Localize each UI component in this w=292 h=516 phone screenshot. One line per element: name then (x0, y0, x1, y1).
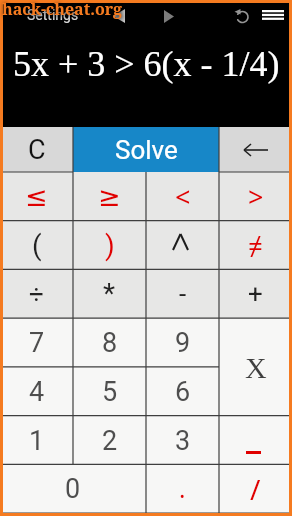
staticText: 6 (175, 376, 191, 408)
button[interactable]: 2 (73, 416, 146, 465)
staticText: ≥ (98, 181, 121, 212)
staticText: + (248, 279, 263, 309)
button[interactable] (262, 10, 284, 21)
button[interactable]: ≠ (219, 221, 292, 270)
button[interactable]: X (219, 318, 292, 416)
button[interactable]: 0 (0, 464, 146, 513)
button[interactable]: 5 (73, 367, 146, 416)
staticText: 2 (102, 425, 118, 457)
button[interactable]: ( (0, 221, 73, 270)
button[interactable]: * (73, 269, 146, 318)
staticText: ) (105, 229, 115, 262)
staticText: - (179, 279, 187, 309)
button[interactable]: < (146, 172, 219, 221)
button[interactable]: Settings (27, 7, 79, 23)
button[interactable]: C (0, 127, 73, 172)
button[interactable]: 8 (73, 318, 146, 367)
button[interactable]: / (219, 464, 292, 513)
staticText: C (28, 134, 46, 166)
button[interactable]: 3 (146, 416, 219, 465)
staticText: > (248, 178, 264, 215)
staticText: 4 (29, 376, 45, 408)
button[interactable]: ≥ (73, 172, 146, 221)
staticText: / (250, 470, 261, 508)
button[interactable] (164, 10, 174, 23)
staticText: 8 (102, 327, 118, 359)
button[interactable]: ) (73, 221, 146, 270)
staticText: 5 (102, 376, 118, 408)
button[interactable]: + (219, 269, 292, 318)
button[interactable] (219, 127, 292, 172)
staticText: 1 (29, 425, 45, 457)
staticText: 3 (175, 425, 191, 457)
button[interactable]: . (146, 464, 219, 513)
staticText: hack-cheat.org (2, 0, 123, 20)
button[interactable]: 1 (0, 416, 73, 465)
staticText: 9 (175, 327, 191, 359)
staticText: ( (32, 229, 42, 262)
staticText: ÷ (29, 279, 44, 309)
button[interactable]: 9 (146, 318, 219, 367)
button[interactable]: 7 (0, 318, 73, 367)
staticText: 0 (65, 473, 81, 505)
staticText: < (175, 178, 191, 215)
button[interactable]: 4 (0, 367, 73, 416)
button[interactable]: - (146, 269, 219, 318)
button[interactable] (219, 416, 292, 465)
staticText: * (103, 277, 116, 310)
button[interactable]: ÷ (0, 269, 73, 318)
button[interactable]: > (219, 172, 292, 221)
staticText: ≤ (25, 181, 48, 212)
button[interactable] (234, 9, 250, 24)
staticText: X (245, 351, 267, 384)
staticText: ≠ (248, 228, 263, 263)
staticText: . (179, 472, 186, 505)
staticText: 7 (29, 327, 45, 359)
button[interactable]: ≤ (0, 172, 73, 221)
button[interactable]: 6 (146, 367, 219, 416)
button[interactable] (113, 9, 125, 23)
button[interactable]: Solve (73, 127, 219, 176)
staticText: 5x + 3 > 6(x - 1/4) (13, 44, 280, 84)
button[interactable] (146, 221, 219, 270)
staticText: Solve (115, 135, 178, 165)
